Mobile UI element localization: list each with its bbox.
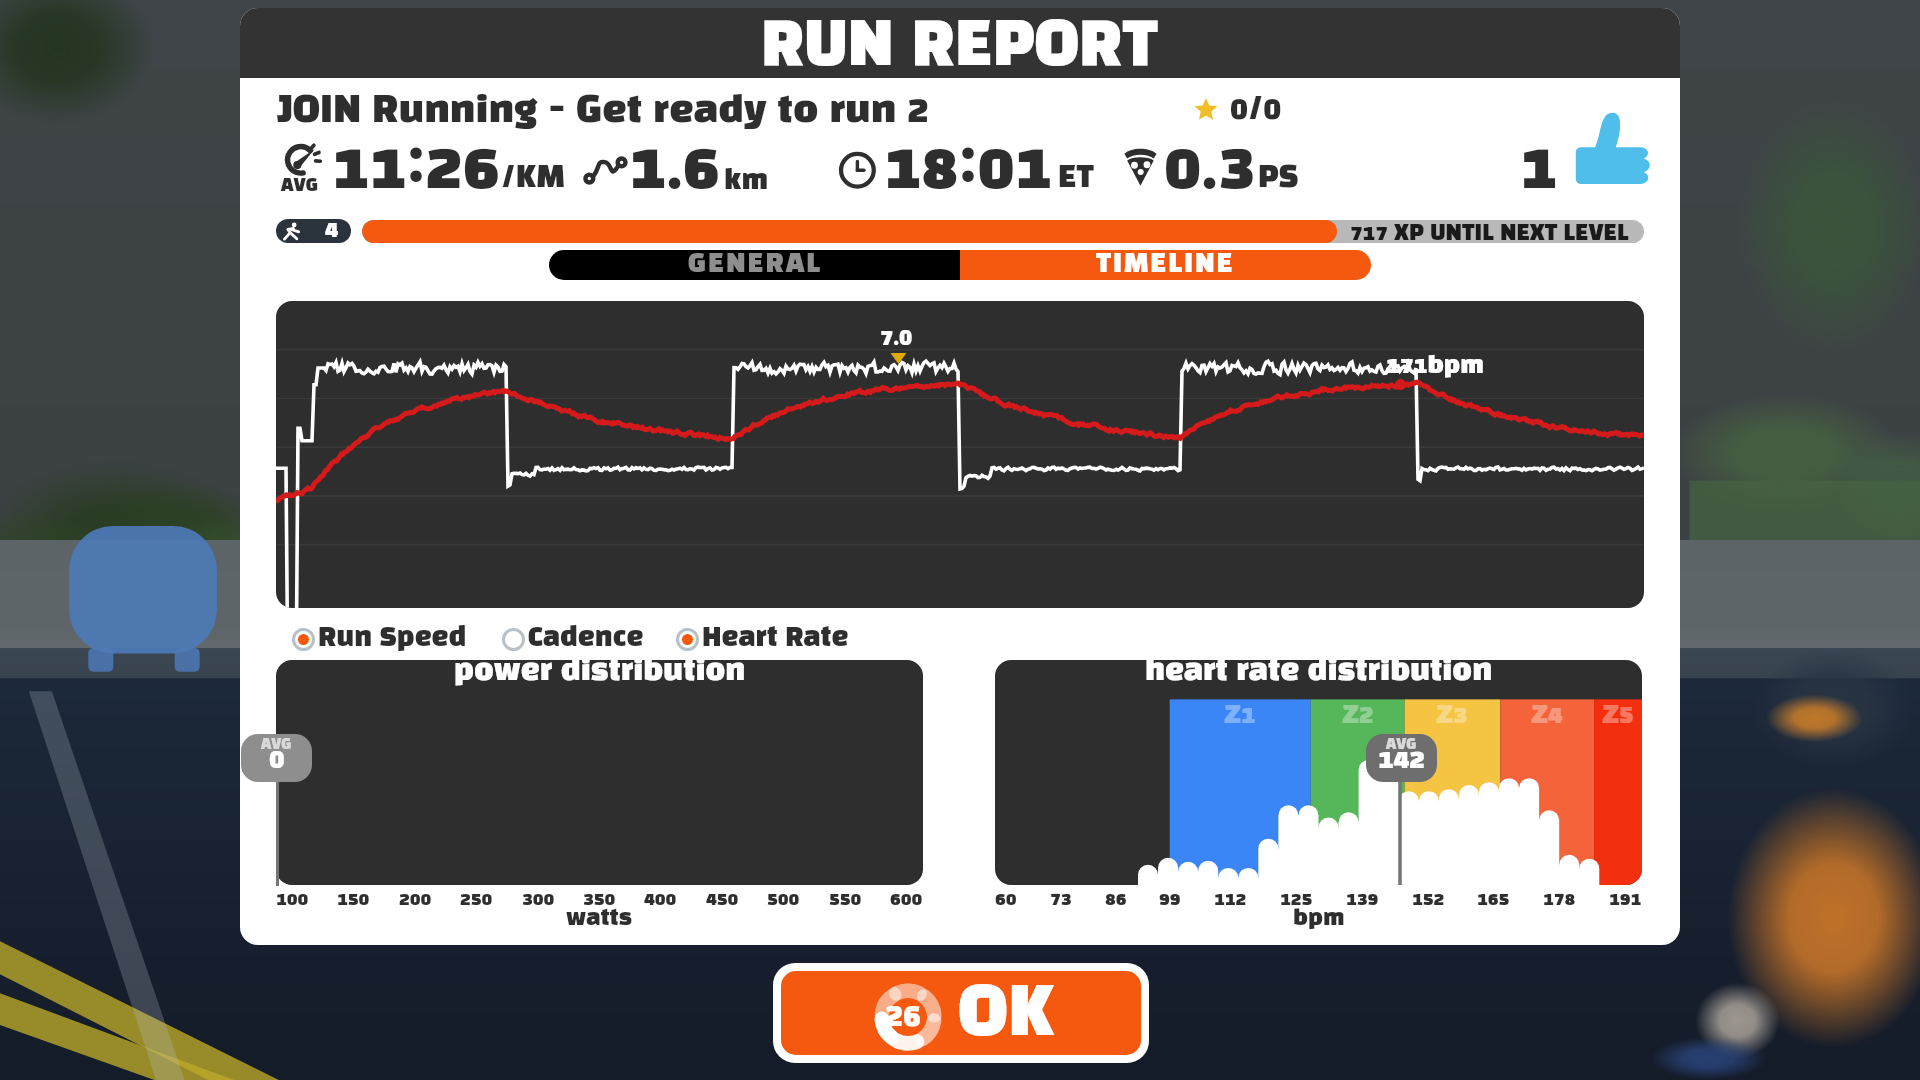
staticText: 125 [1280,891,1313,909]
button[interactable]: Run Speed [292,627,467,652]
staticText: Z4 [1531,704,1563,728]
staticText: 178 [1543,891,1576,909]
staticText: 112 [1214,891,1247,909]
staticText: JOIN Running - Get ready to run 2 [277,94,929,130]
staticText: PS [1258,164,1299,193]
staticText: 99 [1159,891,1181,909]
staticText: 450 [706,891,739,909]
staticText: 717 XP UNTIL NEXT LEVEL [1350,223,1629,243]
staticText: 350 [583,891,616,909]
staticText: 26 [885,1002,921,1032]
staticText: AVG [261,738,292,752]
staticText: 4 [325,220,339,242]
staticText: 150 [337,891,370,909]
staticText: km [724,168,769,194]
button[interactable]: TIMELINE [960,250,1371,280]
staticText: 550 [829,891,862,909]
staticText: GENERAL [688,252,822,277]
button[interactable]: Heart Rate [676,627,849,652]
staticText: 7.0 [880,328,913,350]
staticText: AVG [281,178,318,195]
staticText: power distribution [454,660,746,686]
staticText: 0 [269,747,285,773]
staticText: Z3 [1436,704,1468,728]
button[interactable]: Cadence [502,627,644,652]
staticText: 171bpm [1386,355,1484,378]
staticText: TIMELINE [1096,252,1235,277]
staticText: AVG [1386,738,1417,752]
staticText: RUN REPORT [761,18,1158,77]
button[interactable]: 26 [781,971,1141,1055]
staticText: 200 [399,891,432,909]
staticText: 1 [1520,139,1558,201]
staticText: Z5 [1602,704,1634,728]
button[interactable]: GENERAL [549,250,960,280]
staticText: ET [1058,164,1094,193]
staticText: 500 [767,891,800,909]
staticText: 152 [1412,891,1445,909]
staticText: heart rate distribution [1145,660,1493,686]
staticText: 139 [1346,891,1379,909]
staticText: 0/0 [1230,95,1282,125]
staticText: 60 [995,891,1017,909]
staticText: 165 [1477,891,1510,909]
staticText: bpm [1293,908,1345,929]
staticText: Heart Rate [702,626,849,651]
staticText: 142 [1378,747,1425,773]
staticText: Z1 [1224,704,1256,728]
staticText: 18:01 [884,139,1052,201]
staticText: 1.6 [629,139,720,201]
staticText: Cadence [528,626,644,651]
staticText: 11:26 [332,139,500,201]
staticText: 191 [1609,891,1642,909]
staticText: 400 [644,891,677,909]
staticText: 100 [276,891,309,909]
staticText: Run Speed [318,626,467,651]
staticText: 250 [460,891,493,909]
staticText: 0.3 [1164,139,1255,201]
staticText: /KM [501,164,565,193]
staticText: OK [958,983,1055,1049]
staticText: 73 [1050,891,1072,909]
staticText: 86 [1105,891,1127,909]
staticText: 300 [522,891,555,909]
other: Ride on [1571,108,1651,188]
staticText: 600 [890,891,923,909]
staticText: Z2 [1342,704,1374,728]
staticText: watts [566,908,633,929]
